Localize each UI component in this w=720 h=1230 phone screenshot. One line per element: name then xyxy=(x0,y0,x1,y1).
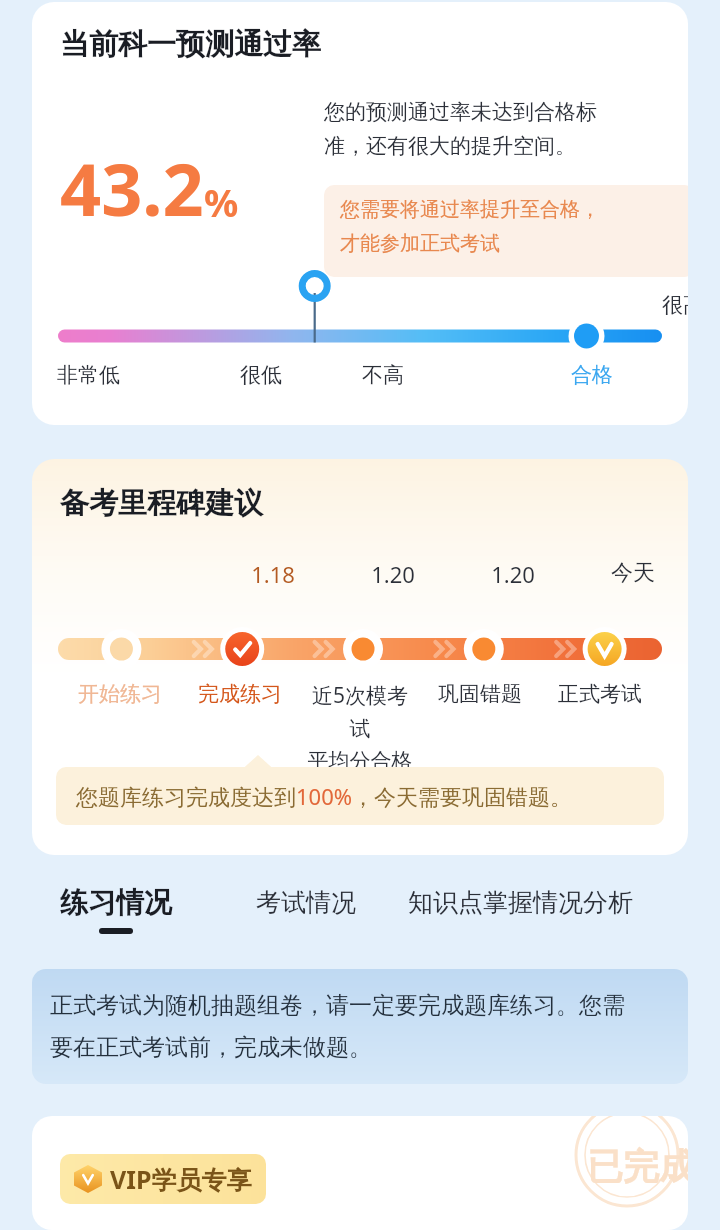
staticText: 您需要将通过率提升至合格， 才能参加正式考试 xyxy=(340,197,600,256)
staticText: 已完成 xyxy=(587,1144,688,1189)
staticText: 近5次模考试 平均分合格 xyxy=(302,681,418,774)
staticText: VIP学员专享 xyxy=(110,1162,252,1196)
staticText: 开始练习 xyxy=(78,681,162,707)
staticText: 完成练习 xyxy=(198,681,282,707)
staticText: 您题库练习完成度达到100%，今天需要巩固错题。 xyxy=(76,781,573,811)
staticText: 1.20 xyxy=(371,559,415,589)
staticText: 您的预测通过率未达到合格标 准，还有很大的提升空间。 xyxy=(324,99,684,160)
staticText: 知识点掌握情况分析 xyxy=(408,887,633,918)
staticText: 练习情况 xyxy=(60,885,172,920)
staticText: 合格 xyxy=(571,362,613,388)
staticText: 当前科一预测通过率 xyxy=(60,26,321,63)
staticText: 很低 xyxy=(240,362,282,388)
staticText: % xyxy=(204,176,239,228)
staticText: 非常低 xyxy=(57,362,120,388)
staticText: 43.2 xyxy=(60,139,204,237)
staticText: 今天 xyxy=(611,559,655,587)
button[interactable]: VIP学员专享 xyxy=(60,1154,266,1204)
staticText: 正式考试 xyxy=(558,681,642,707)
staticText: 不高 xyxy=(362,362,404,388)
staticText: 巩固错题 xyxy=(438,681,522,707)
staticText: 正式考试为随机抽题组卷，请一定要完成题库练习。您需 要在正式考试前，完成未做题。 xyxy=(50,991,625,1062)
button[interactable]: 练习情况 xyxy=(56,883,176,936)
staticText: 1.20 xyxy=(491,559,535,589)
button[interactable]: 考试情况 xyxy=(252,885,360,920)
button[interactable]: 知识点掌握情况分析 xyxy=(404,885,637,920)
staticText: 考试情况 xyxy=(256,887,356,918)
staticText: 很高 xyxy=(662,292,688,318)
staticText: 备考里程碑建议 xyxy=(60,485,263,522)
staticText: 1.18 xyxy=(251,559,295,589)
